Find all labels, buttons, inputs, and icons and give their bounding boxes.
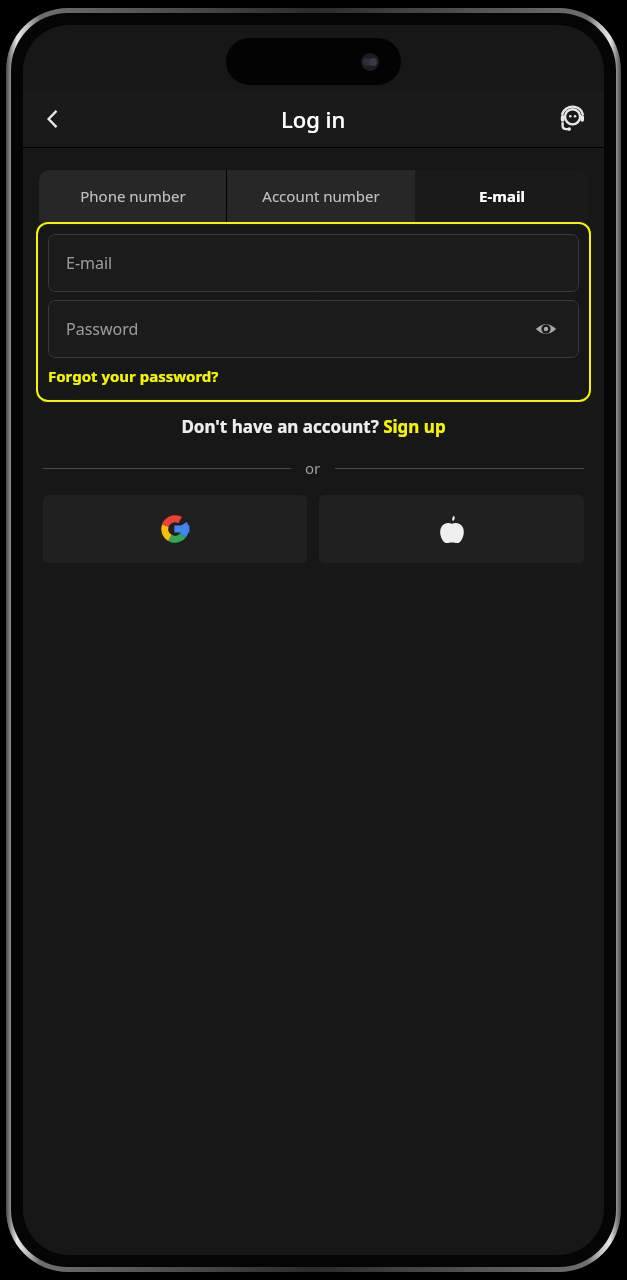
staticText: Account number (262, 186, 380, 206)
button[interactable]: E-mail (415, 170, 588, 222)
staticText: Don't have an account? Sign up (181, 415, 446, 438)
staticText: Log in (281, 104, 346, 134)
button[interactable]: Password (48, 300, 579, 358)
button[interactable]: Customer support (550, 97, 594, 141)
button[interactable]: Phone number (39, 170, 226, 222)
button[interactable]: Don't have an account? Sign up (23, 415, 604, 438)
button[interactable]: E-mail (48, 234, 579, 292)
staticText: Phone number (80, 186, 186, 206)
button[interactable]: Back (31, 97, 75, 141)
button[interactable]: Sign in with Apple (319, 495, 584, 563)
staticText: Password (66, 318, 139, 340)
button[interactable]: Sign in with Google (43, 495, 307, 563)
button[interactable]: Show password (531, 314, 561, 344)
staticText: E-mail (479, 186, 525, 206)
staticText: E-mail (66, 252, 113, 274)
staticText: or (305, 458, 321, 478)
button[interactable]: Forgot your password? (48, 365, 219, 387)
button[interactable]: Account number (227, 170, 415, 222)
